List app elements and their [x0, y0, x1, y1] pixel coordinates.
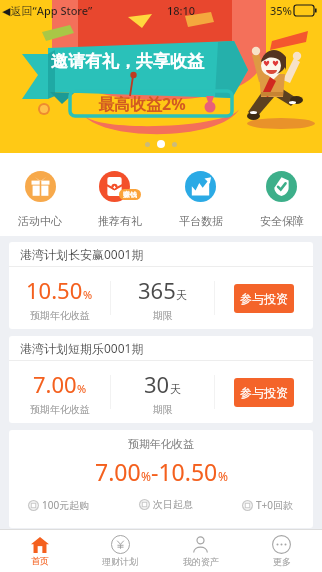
staticText: %	[218, 468, 228, 484]
staticText: 30	[144, 369, 170, 399]
staticText: 次日起息	[153, 498, 193, 511]
button[interactable]: ◀返回“App Store”	[0, 0, 322, 153]
staticText: 安全保障	[260, 214, 304, 228]
button[interactable]: 平台数据	[160, 153, 241, 236]
staticText: 10.50	[26, 275, 83, 305]
button[interactable]: 首页	[0, 530, 80, 572]
staticText: 期限	[153, 403, 173, 416]
staticText: 预期年化收益	[30, 403, 90, 416]
staticText: 期限	[153, 309, 173, 322]
other: 平台数据	[185, 171, 216, 202]
staticText: 参与投资	[240, 291, 288, 306]
staticText: 35%	[270, 3, 292, 18]
other: 安全保障	[266, 171, 297, 202]
button[interactable]: 推荐有礼	[80, 153, 160, 236]
button[interactable]: 理财计划	[80, 530, 160, 572]
staticText: 赚钱	[123, 190, 137, 199]
button[interactable]: 港湾计划短期乐0001期	[9, 336, 313, 423]
button[interactable]: 港湾计划长安赢0001期	[9, 242, 313, 329]
button[interactable]: 参与投资	[234, 284, 294, 313]
staticText: 理财计划	[102, 556, 138, 567]
staticText: 港湾计划短期乐0001期	[20, 340, 144, 356]
staticText: ◀返回“App Store”	[2, 3, 93, 18]
other: 活动中心	[25, 171, 56, 202]
staticText: 平台数据	[179, 214, 223, 228]
staticText: 推荐有礼	[98, 214, 142, 228]
other: 推荐有礼	[99, 171, 130, 202]
staticText: 天	[176, 288, 187, 302]
staticText: 活动中心	[18, 214, 62, 228]
staticText: 18:10	[167, 3, 196, 18]
staticText: 天	[170, 382, 181, 396]
staticText: 参与投资	[240, 385, 288, 400]
staticText: 预期年化收益	[30, 309, 90, 322]
button[interactable]: 更多	[241, 530, 322, 572]
staticText: %	[141, 468, 151, 484]
staticText: 首页	[31, 555, 49, 566]
button[interactable]: 安全保障	[241, 153, 322, 236]
staticText: %	[83, 287, 93, 302]
button[interactable]: 预期年化收益	[9, 430, 313, 528]
staticText: 港湾计划长安赢0001期	[20, 246, 144, 262]
button[interactable]: 参与投资	[234, 378, 294, 407]
staticText: 预期年化收益	[128, 437, 194, 451]
other: 首页	[31, 537, 49, 553]
button[interactable]: 活动中心	[0, 153, 80, 236]
staticText: 邀请有礼，共享收益	[51, 51, 204, 72]
staticText: %	[77, 381, 87, 396]
staticText: 最高收益2%	[98, 93, 186, 115]
staticText: -10.50	[151, 456, 218, 487]
staticText: 365	[138, 275, 176, 305]
staticText: 7.00	[33, 369, 77, 399]
button[interactable]: 我的资产	[160, 530, 241, 572]
staticText: 100元起购	[42, 498, 90, 512]
staticText: T+0回款	[256, 498, 293, 512]
staticText: 更多	[273, 556, 291, 567]
staticText: 7.00	[95, 456, 141, 487]
staticText: 我的资产	[183, 556, 219, 567]
